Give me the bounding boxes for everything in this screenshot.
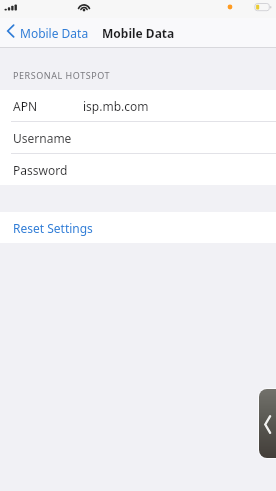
- button[interactable]: Reset Settings: [0, 212, 276, 243]
- button[interactable]: APN: [0, 90, 276, 122]
- button[interactable]: Expand panel: [259, 389, 276, 458]
- staticText: isp.mb.com: [83, 98, 149, 114]
- staticText: Mobile Data: [102, 25, 175, 41]
- staticText: Password: [13, 162, 68, 178]
- staticText: APN: [13, 98, 38, 114]
- staticText: Username: [13, 130, 72, 146]
- button[interactable]: Password: [0, 154, 276, 185]
- staticText: Mobile Data: [20, 25, 89, 41]
- staticText: PERSONAL HOTSPOT: [13, 69, 111, 81]
- staticText: Reset Settings: [13, 220, 93, 236]
- button[interactable]: Mobile Data: [5, 18, 89, 48]
- button[interactable]: Username: [0, 122, 276, 154]
